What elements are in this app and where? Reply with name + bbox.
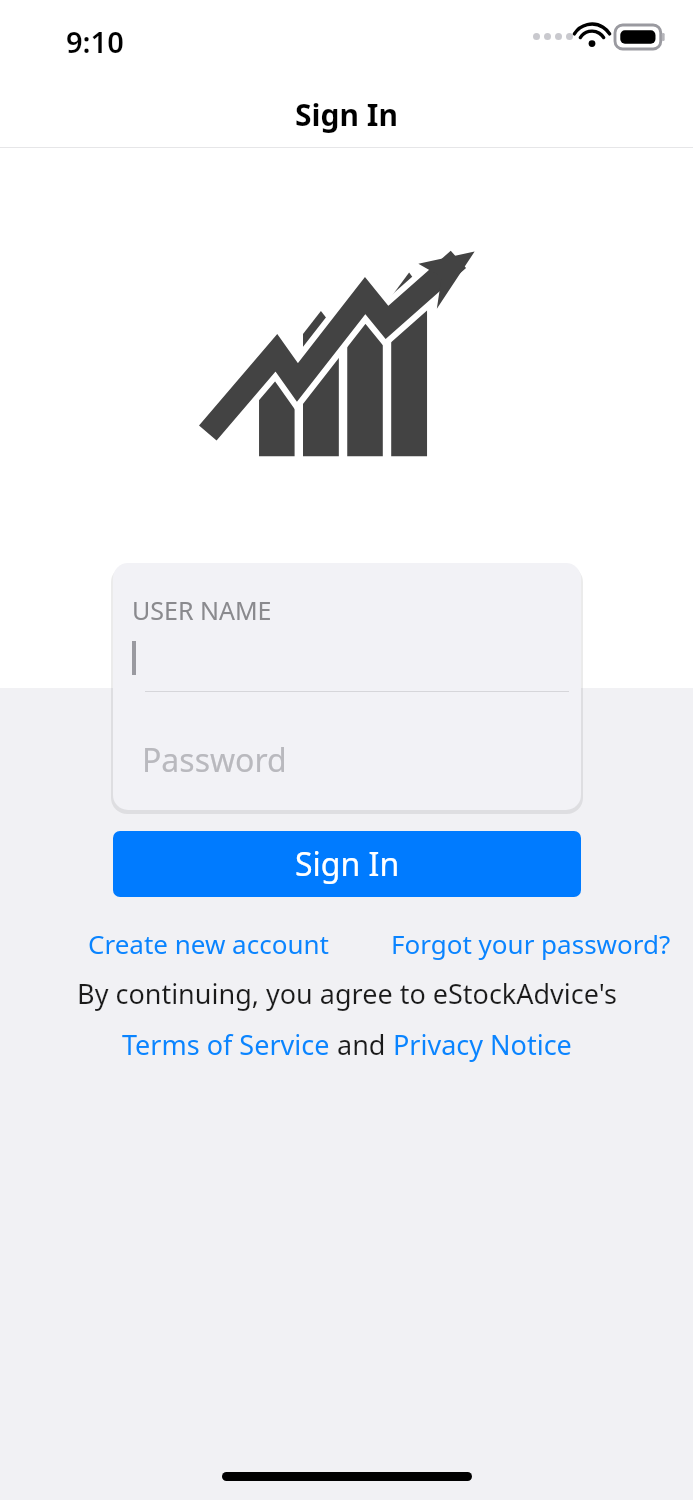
button[interactable]: Privacy Notice [393, 1026, 572, 1063]
staticText: USER NAME [132, 593, 272, 627]
staticText: Sign In [295, 94, 398, 135]
staticText: Privacy Notice [393, 1026, 572, 1063]
staticText: 9:10 [66, 22, 124, 61]
button[interactable]: Forgot your password? [389, 920, 673, 967]
staticText: Create new account [88, 926, 329, 961]
button[interactable]: Password field [113, 713, 581, 803]
staticText: By continuing, you agree to eStockAdvice… [77, 975, 617, 1012]
staticText: Terms of Service [122, 1026, 330, 1063]
button[interactable]: Terms of Service [122, 1026, 330, 1063]
staticText: Password [142, 738, 287, 782]
button[interactable]: User name field [113, 581, 581, 693]
staticText: Sign In [295, 842, 400, 886]
staticText: and [330, 1026, 393, 1063]
button[interactable]: Sign In [113, 831, 581, 897]
staticText: Forgot your password? [391, 926, 671, 961]
button[interactable]: Create new account [86, 920, 331, 967]
